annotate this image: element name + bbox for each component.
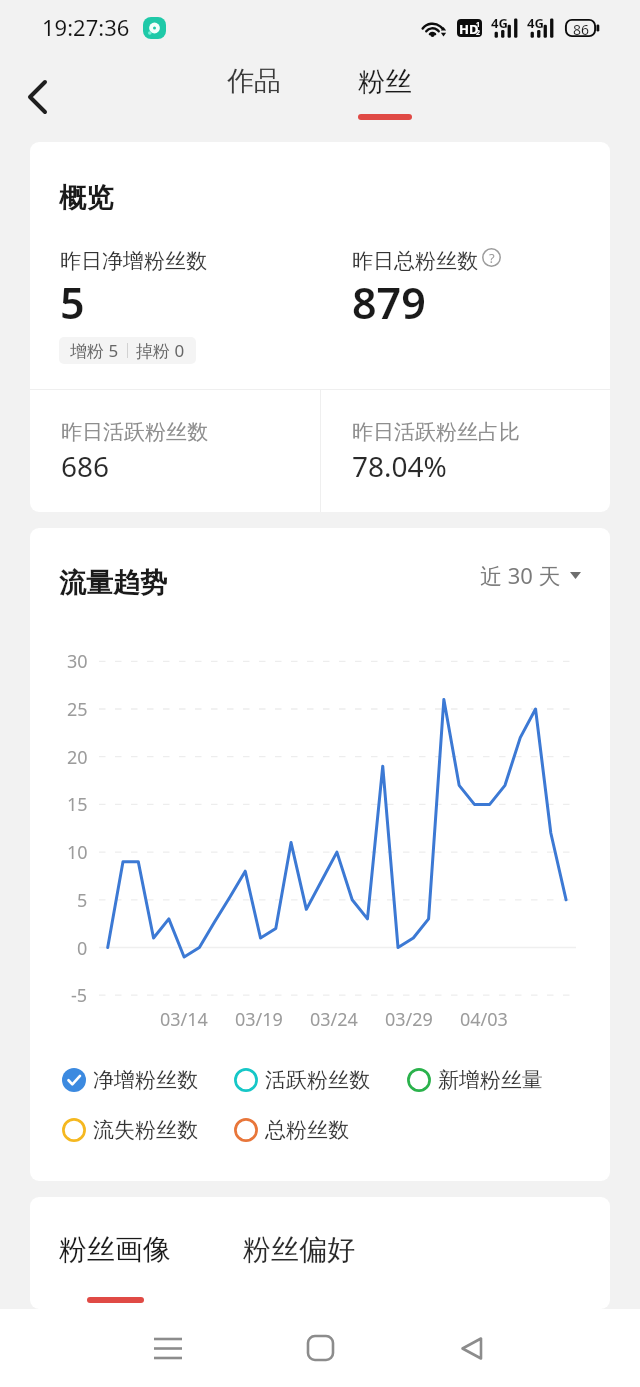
button[interactable]: 粉丝偏好 [229, 1232, 369, 1276]
button[interactable]: 粉丝 [343, 65, 427, 120]
button[interactable]: 净增粉丝数 [62, 1063, 198, 1097]
staticText: 掉粉 0 [136, 339, 185, 362]
staticText: 1 [476, 20, 481, 30]
staticText: 25 [67, 697, 88, 721]
staticText: 昨日净增粉丝数 [60, 248, 207, 274]
button[interactable]: 近 30 天 [480, 559, 581, 591]
staticText: 2 [476, 28, 481, 37]
staticText: 19:27:36 [42, 12, 130, 42]
staticText: 净增粉丝数 [93, 1067, 198, 1093]
staticText: 03/19 [235, 1007, 283, 1031]
staticText: 03/29 [385, 1007, 433, 1031]
staticText: 活跃粉丝数 [265, 1067, 370, 1093]
button[interactable]: 作品 [213, 58, 295, 104]
staticText: 86 [573, 20, 590, 38]
button[interactable]: Recent apps [133, 1309, 203, 1387]
staticText: 10 [67, 840, 88, 864]
staticText: 概览 [59, 181, 113, 215]
button[interactable]: Back [436, 1309, 506, 1387]
staticText: 作品 [227, 64, 281, 98]
staticText: 4G [491, 14, 508, 32]
button[interactable]: Back [11, 71, 63, 123]
staticText: 30 [67, 649, 88, 673]
button[interactable]: 增粉 5 [70, 337, 185, 364]
staticText: 流失粉丝数 [93, 1117, 198, 1143]
staticText: 5 [60, 273, 85, 332]
staticText: 5 [77, 888, 88, 912]
staticText: 近 30 天 [480, 560, 561, 590]
staticText: 粉丝画像 [59, 1232, 171, 1267]
staticText: 03/14 [160, 1007, 208, 1031]
button[interactable]: 活跃粉丝数 [234, 1063, 370, 1097]
staticText: 879 [352, 273, 426, 332]
staticText: 昨日总粉丝数 [352, 248, 478, 274]
staticText: 686 [61, 447, 110, 485]
staticText: 4G [527, 14, 544, 32]
button[interactable]: 总粉丝数 [234, 1113, 349, 1147]
button[interactable]: 新增粉丝量 [407, 1063, 543, 1097]
staticText: 04/03 [460, 1007, 508, 1031]
staticText: ? [489, 249, 495, 267]
staticText: 78.04% [352, 447, 447, 485]
staticText: HD [459, 20, 479, 37]
staticText: 0 [77, 936, 88, 960]
staticText: 粉丝偏好 [243, 1232, 355, 1267]
button[interactable]: 粉丝画像 [45, 1232, 185, 1309]
staticText: 15 [67, 792, 88, 816]
staticText: 流量趋势 [59, 566, 167, 600]
staticText: 增粉 5 [70, 339, 119, 362]
staticText: 03/24 [310, 1007, 358, 1031]
staticText: 新增粉丝量 [438, 1067, 543, 1093]
staticText: -5 [71, 983, 88, 1007]
staticText: 昨日活跃粉丝数 [61, 419, 208, 445]
staticText: 总粉丝数 [265, 1117, 349, 1143]
staticText: 20 [67, 745, 88, 769]
staticText: 粉丝 [358, 65, 412, 99]
staticText: 昨日活跃粉丝占比 [352, 419, 520, 445]
button[interactable]: Home [285, 1309, 355, 1387]
button[interactable]: 流失粉丝数 [62, 1113, 198, 1147]
